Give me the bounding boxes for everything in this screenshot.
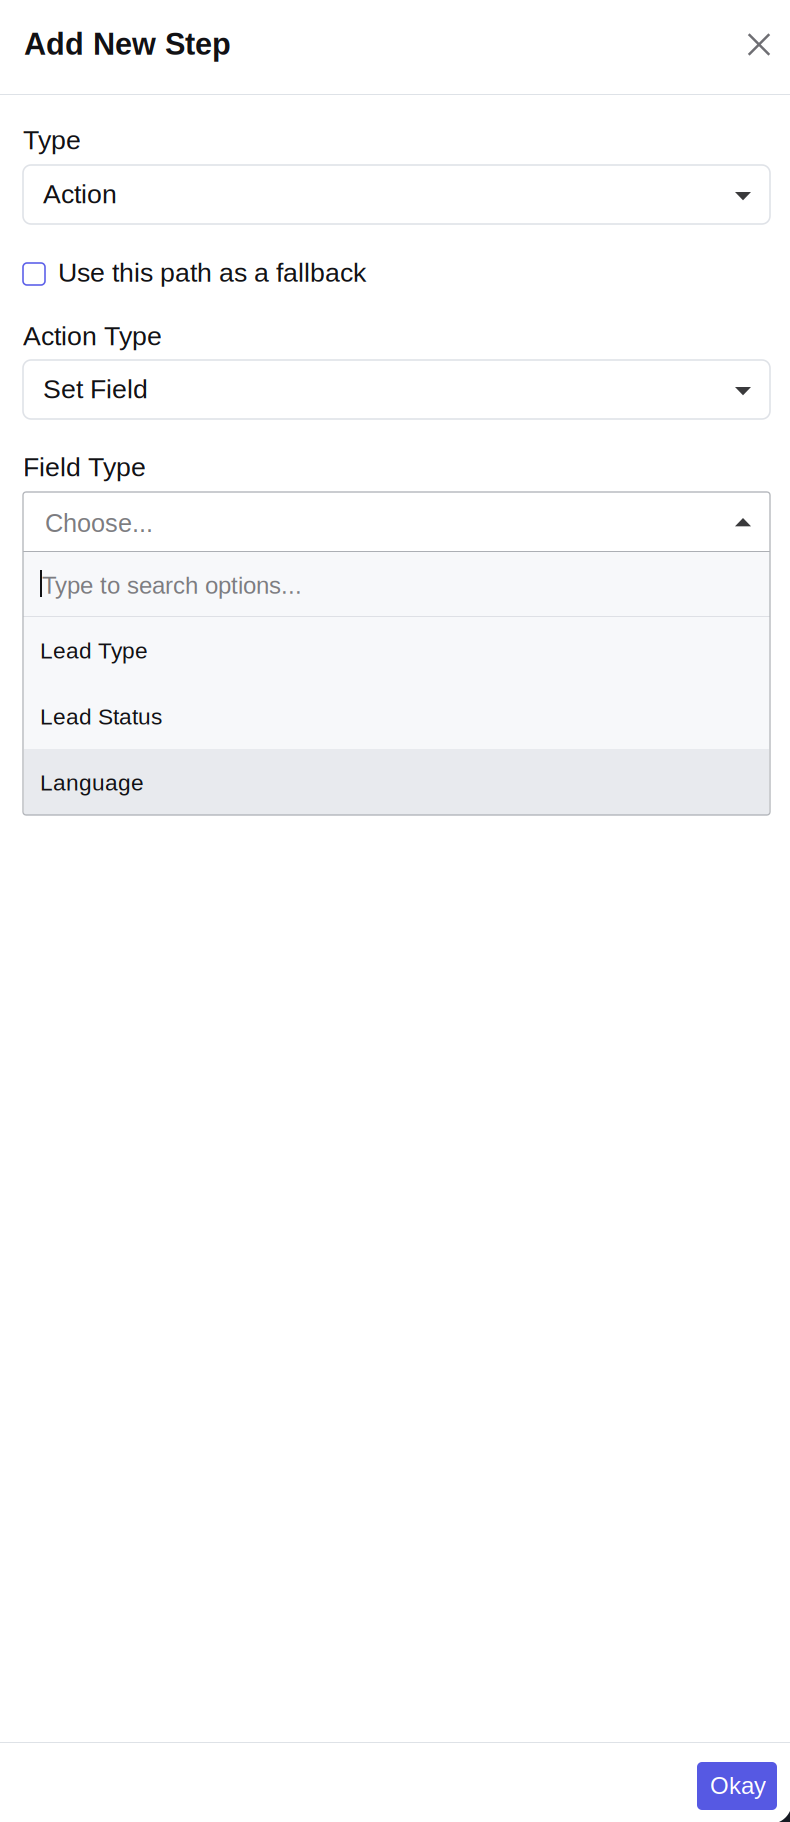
staticText: Okay [710, 1772, 766, 1799]
button[interactable]: Choose... [23, 492, 770, 551]
button[interactable]: Okay [697, 1762, 777, 1810]
staticText: Set Field [43, 374, 148, 404]
staticText: Choose... [45, 509, 153, 537]
button[interactable]: Set Field [23, 360, 770, 419]
staticText: Action [43, 179, 117, 209]
staticText: Field Type [23, 452, 146, 482]
button[interactable]: Use this path as a fallback [23, 250, 368, 292]
staticText: Language [40, 770, 144, 795]
button[interactable]: Close [737, 22, 781, 67]
button[interactable]: Lead Status [24, 683, 769, 749]
staticText: Use this path as a fallback [58, 258, 366, 287]
staticText: Type [23, 125, 81, 155]
staticText: Type to search options... [42, 572, 302, 599]
button[interactable]: Lead Type [24, 617, 769, 683]
staticText: Lead Type [40, 638, 148, 663]
staticText: Add New Step [24, 27, 231, 61]
button[interactable]: Action [23, 165, 770, 224]
button[interactable]: Language [24, 749, 769, 815]
staticText: Action Type [23, 321, 162, 351]
staticText: Lead Status [40, 704, 162, 729]
